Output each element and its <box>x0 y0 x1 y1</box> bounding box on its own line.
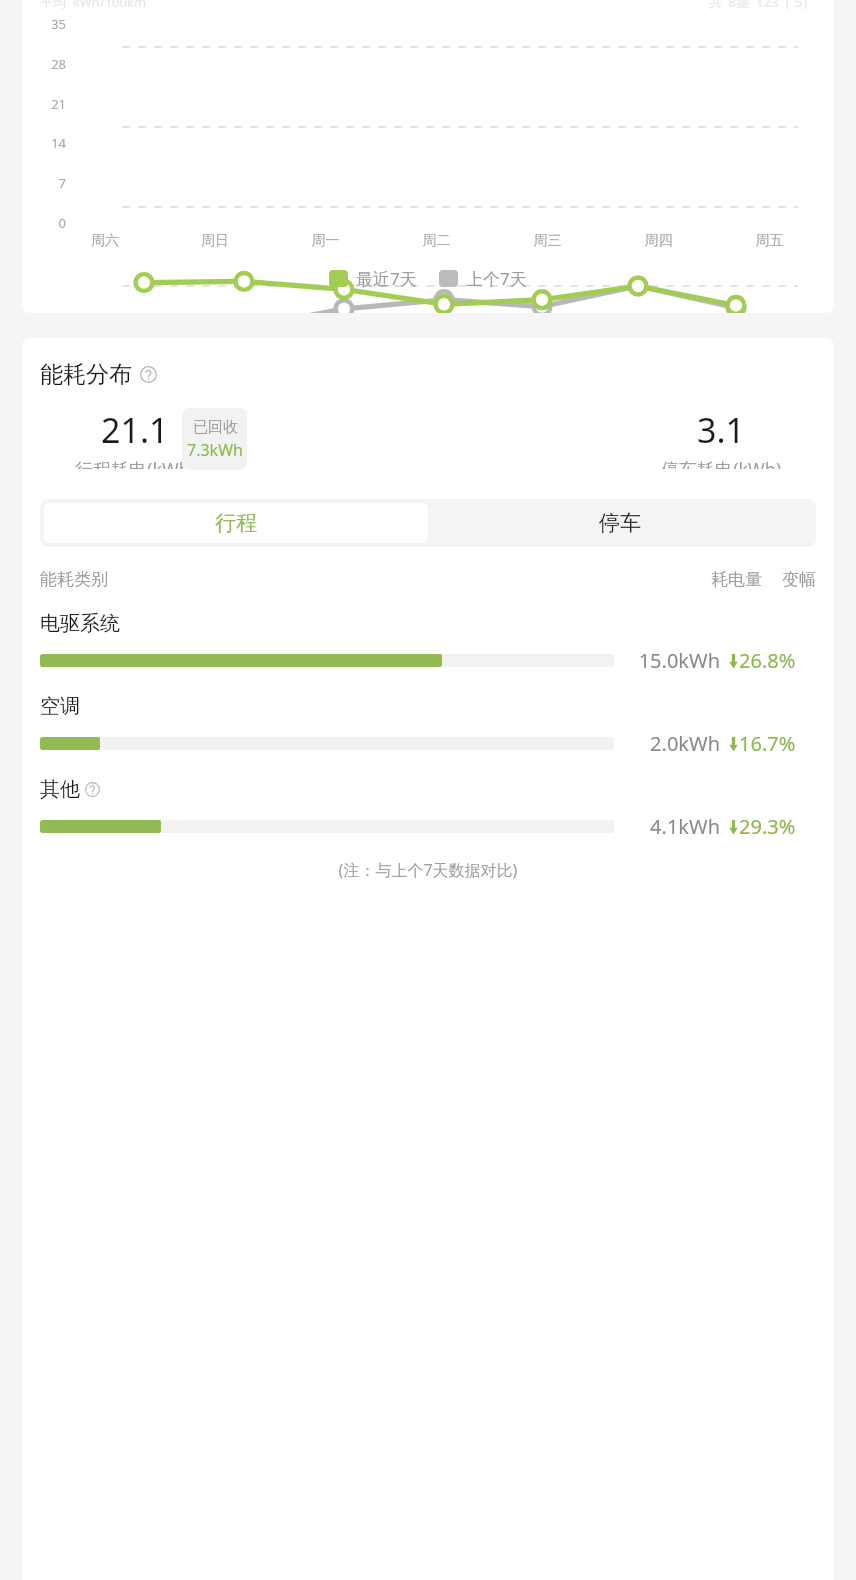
staticText: 能耗分布 <box>40 360 132 389</box>
staticText: 能耗类别 <box>40 569 108 590</box>
staticText: (注：与上个7天数据对比) <box>40 859 816 881</box>
staticText: 15.0kWh <box>628 647 720 674</box>
staticText: 26.8% <box>739 647 796 674</box>
button[interactable]: 空调 <box>40 694 816 757</box>
staticText: 共 8盏 123（ 5） <box>709 0 816 11</box>
staticText: 21 <box>30 95 66 113</box>
button[interactable]: 其他 <box>40 777 816 840</box>
staticText: 其他 <box>40 777 80 802</box>
staticText: 已回收 <box>193 418 238 437</box>
staticText: 行程耗电(kWh) <box>75 457 196 469</box>
staticText: 35 <box>30 15 66 33</box>
staticText: 7 <box>30 174 66 192</box>
staticText: 周三 <box>492 232 603 250</box>
staticText: 0 <box>30 214 66 232</box>
staticText: 上个7天 <box>466 267 527 290</box>
button[interactable]: 电驱系统 <box>40 611 816 674</box>
staticText: 平均 kWh/100km <box>40 0 147 11</box>
staticText: 4.1kWh <box>628 813 720 840</box>
button[interactable]: 停车 <box>428 503 812 543</box>
staticText: 停车 <box>599 510 641 536</box>
staticText: 29.3% <box>739 813 796 840</box>
staticText: 行程 <box>215 510 257 536</box>
staticText: 21.1 <box>101 407 169 453</box>
staticText: 周日 <box>160 232 270 250</box>
staticText: 周一 <box>270 232 381 250</box>
staticText: 空调 <box>40 694 80 719</box>
staticText: 周六 <box>50 232 160 250</box>
staticText: 3.1 <box>697 407 746 453</box>
staticText: 周四 <box>603 232 714 250</box>
staticText: 变幅 <box>782 569 816 590</box>
staticText: 2.0kWh <box>628 730 720 757</box>
staticText: 28 <box>30 55 66 73</box>
staticText: 周五 <box>714 232 825 250</box>
staticText: 停车耗电(kWh) <box>661 457 782 469</box>
staticText: 16.7% <box>739 730 796 757</box>
button[interactable]: 帮助说明 <box>140 366 157 383</box>
staticText: 7.3kWh <box>187 439 243 461</box>
staticText: 周二 <box>381 232 492 250</box>
staticText: 最近7天 <box>356 267 417 290</box>
staticText: 14 <box>30 134 66 152</box>
staticText: 耗电量 <box>711 569 762 590</box>
button[interactable]: 行程 <box>44 503 428 543</box>
staticText: 电驱系统 <box>40 611 120 636</box>
